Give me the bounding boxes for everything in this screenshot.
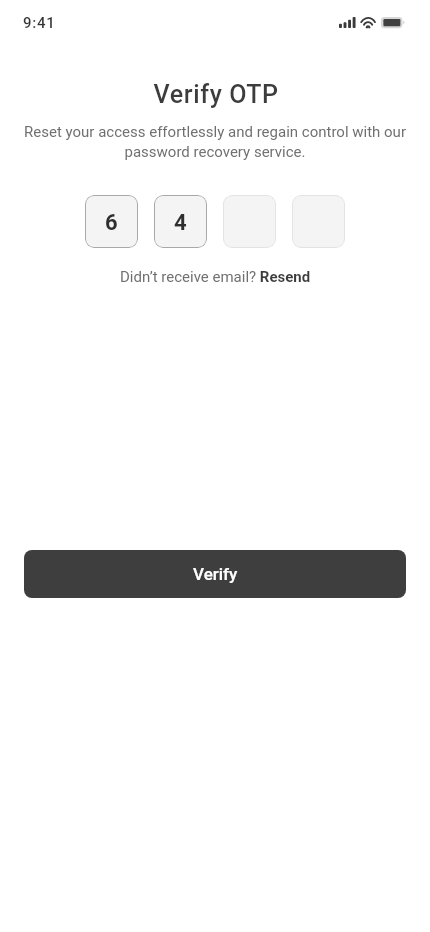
button[interactable]: Empty OTP digit bbox=[223, 195, 276, 248]
other: Wi-Fi bbox=[360, 16, 376, 29]
staticText: Reset your access effortlessly and regai… bbox=[22, 123, 408, 161]
staticText: Verify bbox=[193, 564, 238, 584]
button[interactable]: Didn’t receive email? Resend bbox=[116, 266, 315, 288]
staticText: 4 bbox=[174, 210, 187, 236]
button[interactable]: Empty OTP digit bbox=[292, 195, 345, 248]
button[interactable]: OTP digit 6 bbox=[85, 195, 138, 248]
other: Cellular signal bbox=[339, 17, 356, 28]
staticText: 9:41 bbox=[23, 14, 56, 32]
staticText: 6 bbox=[105, 210, 118, 236]
button[interactable]: OTP digit 4 bbox=[154, 195, 207, 248]
other: Battery bbox=[381, 17, 406, 29]
staticText: Didn’t receive email? Resend bbox=[120, 268, 311, 286]
staticText: Verify OTP bbox=[1, 80, 430, 109]
button[interactable]: Verify bbox=[24, 550, 406, 598]
